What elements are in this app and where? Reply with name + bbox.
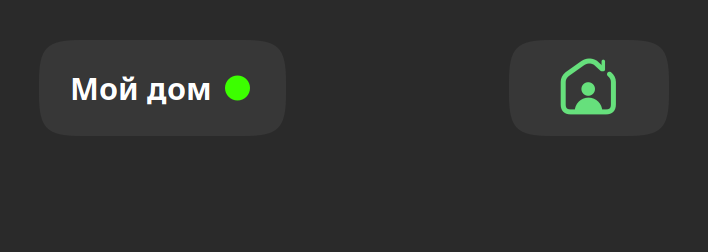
staticText: Мой дом bbox=[70, 68, 212, 108]
button[interactable]: Мой дом bbox=[509, 40, 669, 136]
button[interactable]: Мой дом bbox=[39, 40, 286, 136]
